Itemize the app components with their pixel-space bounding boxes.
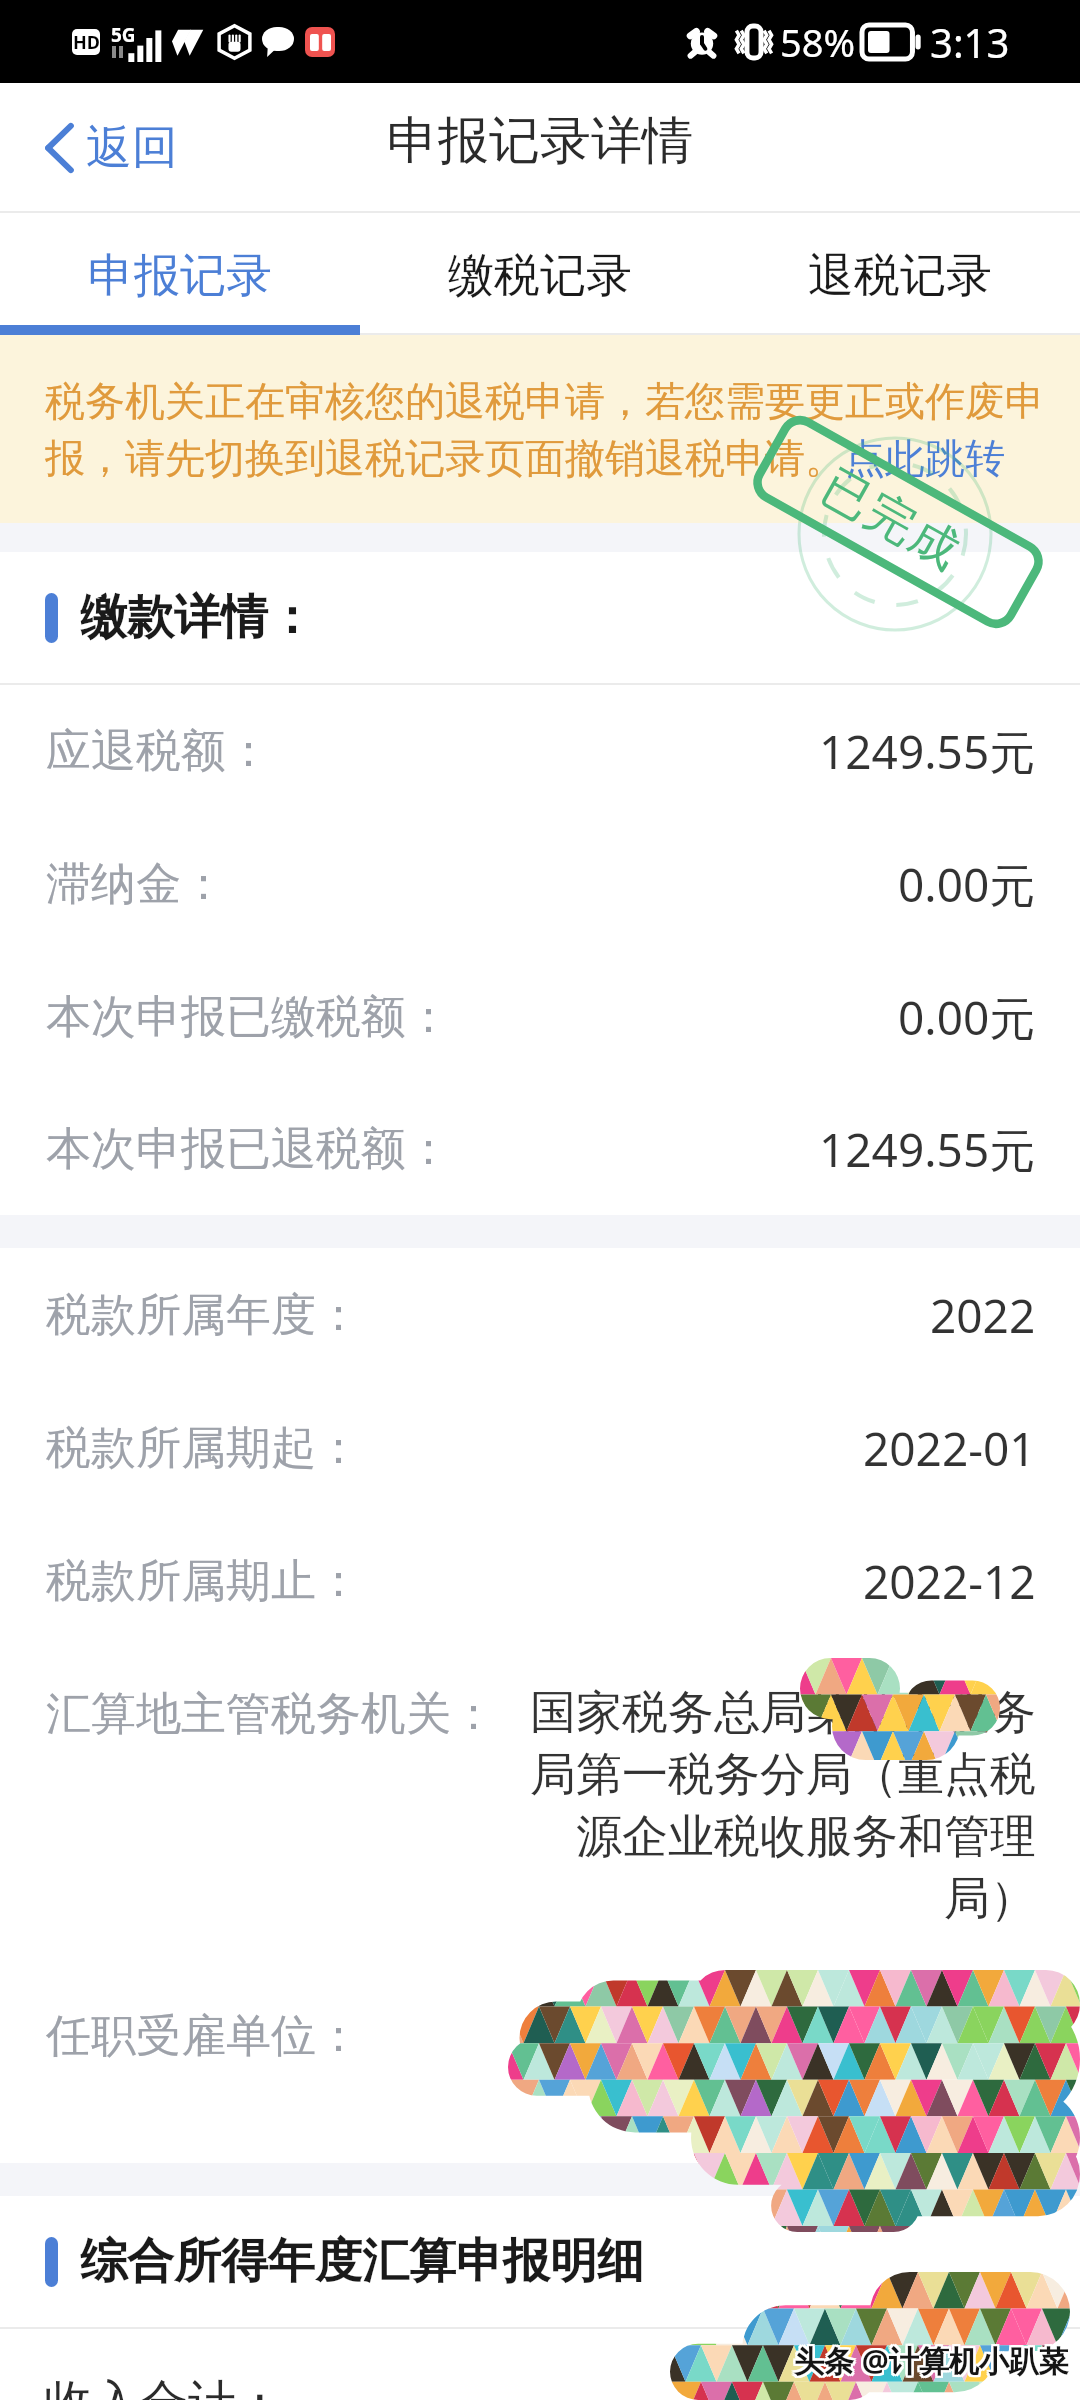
button[interactable]: 税款所属年度： xyxy=(0,1248,1080,1382)
button[interactable]: 汇算地主管税务机关： xyxy=(0,1648,1080,1960)
staticText: 滞纳金： xyxy=(46,856,226,913)
staticText: 头条 @计算机小趴菜 xyxy=(796,2340,1071,2381)
button[interactable]: 滞纳金： xyxy=(0,818,1080,951)
staticText: 收入合计： xyxy=(44,2373,284,2400)
staticText: 0.00元 xyxy=(898,986,1036,1049)
staticText: 58% xyxy=(780,16,856,68)
staticText: 已完成 xyxy=(810,456,971,582)
staticText: 头条 @计算机小趴菜 xyxy=(794,2340,1069,2381)
staticText: 缴税记录 xyxy=(448,247,632,305)
staticText: 税款所属期起： xyxy=(46,1420,361,1477)
staticText: 返回 xyxy=(86,119,178,177)
button[interactable]: 应退税额： xyxy=(0,685,1080,818)
staticText: 退税记录 xyxy=(808,247,992,305)
staticText: 头条 @计算机小趴菜 xyxy=(794,2342,1069,2383)
staticText: 5G xyxy=(111,22,136,48)
staticText: 2022-12 xyxy=(863,1550,1036,1613)
staticText: 2022 xyxy=(930,1284,1036,1347)
staticText: 国家税务总局某某市税务局第一税务分局（重点税源企业税收服务和管理局） xyxy=(506,1684,1036,1928)
staticText: 头条 @计算机小趴菜 xyxy=(792,2342,1067,2383)
staticText: 申报记录详情 xyxy=(387,109,693,173)
staticText: 1249.55元 xyxy=(819,1118,1036,1181)
staticText: 3:13 xyxy=(930,15,1010,69)
button[interactable]: 税款所属期起： xyxy=(0,1382,1080,1515)
staticText: 税款所属年度： xyxy=(46,1287,361,1344)
staticText: 税款所属期止： xyxy=(46,1553,361,1610)
staticText: HD xyxy=(73,30,100,55)
staticText: 综合所得年度汇算申报明细 xyxy=(80,2232,644,2291)
button[interactable]: 任职受雇单位： xyxy=(0,1960,1080,2163)
staticText: 1249.55元 xyxy=(819,720,1036,783)
staticText: 头条 @计算机小趴菜 xyxy=(792,2338,1067,2379)
staticText: 缴款详情： xyxy=(80,588,315,647)
staticText: 汇算地主管税务机关： xyxy=(46,1686,496,1743)
button[interactable]: 返回 Back xyxy=(0,97,202,199)
staticText: 本次申报已缴税额： xyxy=(46,989,451,1046)
staticText: 头条 @计算机小趴菜 xyxy=(792,2340,1067,2381)
staticText: 0.00元 xyxy=(898,853,1036,916)
staticText: 头条 @计算机小趴菜 xyxy=(796,2338,1071,2379)
staticText: 本次申报已退税额： xyxy=(46,1121,451,1178)
button[interactable]: 税款所属期止： xyxy=(0,1515,1080,1648)
staticText: 头条 @计算机小趴菜 xyxy=(794,2338,1069,2379)
button[interactable]: 本次申报已缴税额： xyxy=(0,951,1080,1084)
staticText: 头条 @计算机小趴菜 xyxy=(794,2340,1069,2381)
staticText: 应退税额： xyxy=(46,723,271,780)
staticText: 2022-01 xyxy=(863,1417,1036,1480)
staticText: 头条 @计算机小趴菜 xyxy=(796,2342,1071,2383)
button[interactable]: 退税记录 xyxy=(720,213,1080,335)
staticText: 税务机关正在审核您的退税申请，若您需要更正或作废申 报，请先切换到退税记录页面撤… xyxy=(45,376,1060,483)
button[interactable]: 缴税记录 xyxy=(360,213,720,335)
button[interactable]: 申报记录 xyxy=(0,213,360,335)
button[interactable]: 税务机关正在审核您的退税申请，若您需要更正或作废申 报，请先切换到退税记录页面撤… xyxy=(0,335,1080,523)
button[interactable]: 收入合计： xyxy=(0,2329,1080,2400)
staticText: 申报记录 xyxy=(88,247,272,305)
staticText: 任职受雇单位： xyxy=(46,2008,361,2065)
button[interactable]: 本次申报已退税额： xyxy=(0,1084,1080,1215)
